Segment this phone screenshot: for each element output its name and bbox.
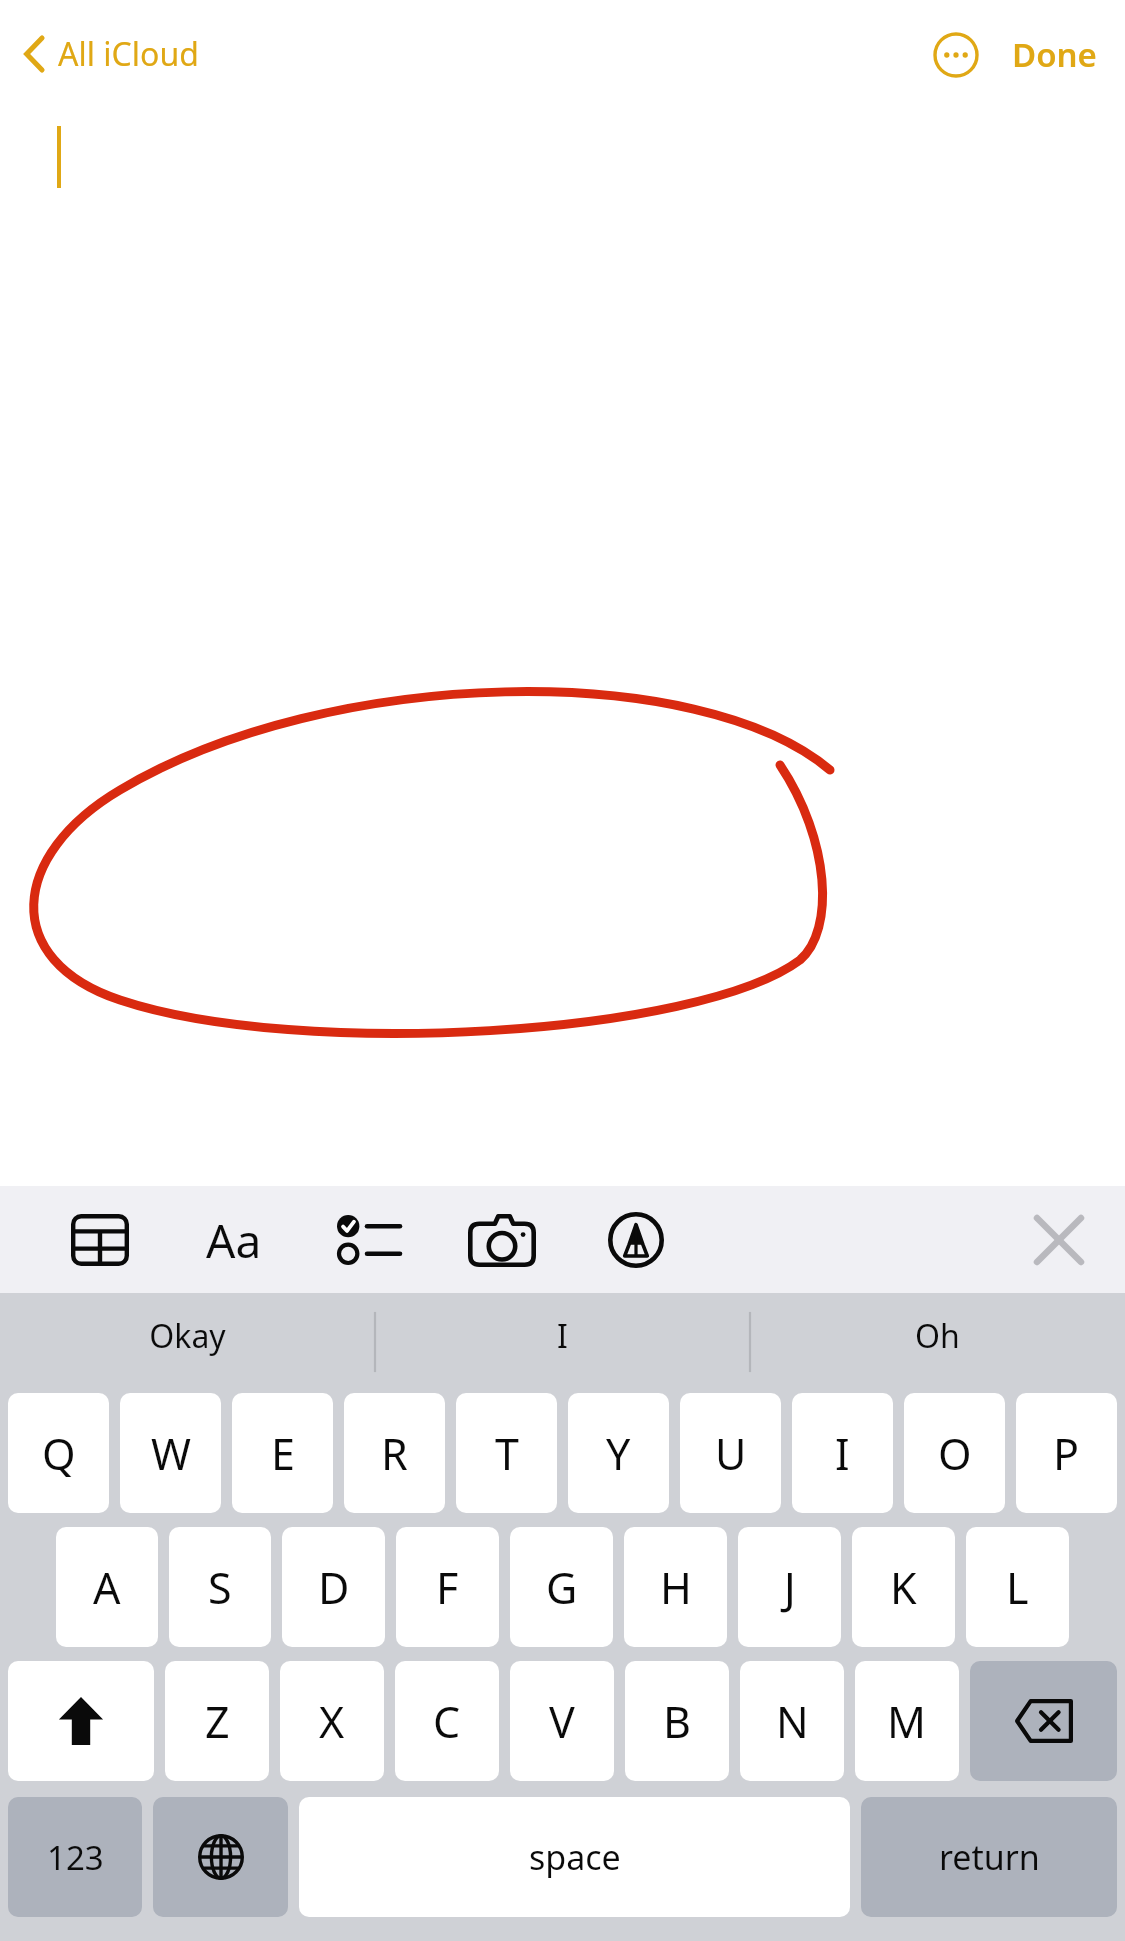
staticText: E: [271, 1424, 295, 1483]
staticText: G: [546, 1558, 578, 1617]
staticText: R: [381, 1424, 408, 1483]
staticText: A: [93, 1558, 121, 1617]
staticText: All iCloud: [58, 32, 199, 76]
button[interactable]: H: [624, 1527, 727, 1647]
button[interactable]: L: [966, 1527, 1069, 1647]
button[interactable]: space: [299, 1797, 850, 1917]
button[interactable]: Camera: [450, 1190, 554, 1290]
button[interactable]: Okay: [0, 1293, 375, 1379]
staticText: Aa: [206, 1209, 262, 1272]
button[interactable]: B: [625, 1661, 729, 1781]
staticText: C: [433, 1692, 461, 1751]
button[interactable]: O: [904, 1393, 1005, 1513]
button[interactable]: J: [738, 1527, 841, 1647]
staticText: 123: [47, 1835, 104, 1880]
button[interactable]: Markup: [584, 1190, 688, 1290]
button[interactable]: Text formatting: [182, 1190, 286, 1290]
button[interactable]: Done: [1002, 24, 1107, 85]
staticText: V: [549, 1692, 575, 1751]
button[interactable]: All iCloud: [0, 24, 215, 84]
staticText: O: [938, 1424, 972, 1483]
staticText: Q: [42, 1424, 76, 1483]
button[interactable]: Switch language: [153, 1797, 288, 1917]
button[interactable]: V: [510, 1661, 614, 1781]
staticText: return: [939, 1834, 1040, 1880]
staticText: H: [660, 1558, 692, 1617]
staticText: P: [1053, 1424, 1080, 1483]
button[interactable]: T: [456, 1393, 557, 1513]
button[interactable]: Y: [568, 1393, 669, 1513]
staticText: F: [436, 1558, 459, 1617]
staticText: Z: [205, 1692, 230, 1751]
button[interactable]: 123: [8, 1797, 142, 1917]
button[interactable]: I: [375, 1293, 750, 1379]
staticText: Okay: [149, 1314, 226, 1358]
button[interactable]: R: [344, 1393, 445, 1513]
button[interactable]: More options: [928, 27, 984, 83]
button[interactable]: C: [395, 1661, 499, 1781]
staticText: S: [208, 1558, 232, 1617]
button[interactable]: Q: [8, 1393, 109, 1513]
staticText: D: [318, 1558, 350, 1617]
button[interactable]: Backspace: [970, 1661, 1117, 1781]
button[interactable]: A: [56, 1527, 158, 1647]
staticText: L: [1006, 1558, 1029, 1617]
button[interactable]: X: [280, 1661, 384, 1781]
button[interactable]: I: [792, 1393, 893, 1513]
button[interactable]: return: [861, 1797, 1117, 1917]
staticText: U: [715, 1424, 747, 1483]
button[interactable]: Insert table: [48, 1190, 152, 1290]
staticText: I: [835, 1424, 850, 1483]
button[interactable]: P: [1016, 1393, 1117, 1513]
staticText: K: [890, 1558, 917, 1617]
staticText: B: [663, 1692, 691, 1751]
button[interactable]: D: [282, 1527, 385, 1647]
staticText: J: [784, 1558, 796, 1617]
button[interactable]: Close keyboard: [1013, 1194, 1105, 1286]
staticText: M: [887, 1692, 927, 1751]
button[interactable]: F: [396, 1527, 499, 1647]
button[interactable]: M: [855, 1661, 959, 1781]
button[interactable]: Oh: [750, 1293, 1125, 1379]
staticText: Done: [1012, 32, 1097, 77]
staticText: W: [151, 1424, 191, 1483]
button[interactable]: W: [120, 1393, 221, 1513]
button[interactable]: Shift: [8, 1661, 154, 1781]
button[interactable]: Checklist: [316, 1190, 420, 1290]
staticText: N: [776, 1692, 809, 1751]
staticText: I: [557, 1314, 568, 1358]
button[interactable]: E: [232, 1393, 333, 1513]
button[interactable]: U: [680, 1393, 781, 1513]
staticText: space: [529, 1834, 621, 1880]
staticText: T: [495, 1424, 519, 1483]
staticText: Oh: [915, 1314, 960, 1358]
button[interactable]: S: [169, 1527, 271, 1647]
button[interactable]: K: [852, 1527, 955, 1647]
staticText: X: [319, 1692, 345, 1751]
button[interactable]: G: [510, 1527, 613, 1647]
button[interactable]: N: [740, 1661, 844, 1781]
staticText: Y: [606, 1424, 631, 1483]
button[interactable]: Z: [165, 1661, 269, 1781]
